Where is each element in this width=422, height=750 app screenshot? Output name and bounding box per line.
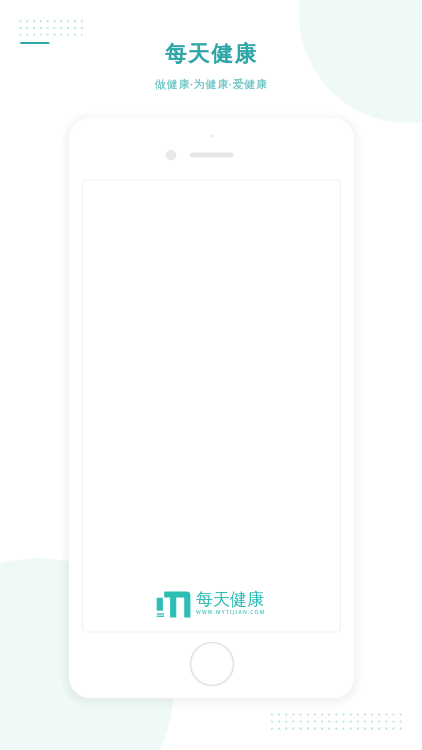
other: 每天健康 logo — [156, 587, 192, 619]
staticText: 做健康·为健康·爱健康 — [155, 76, 268, 91]
staticText: 每天健康 — [165, 40, 258, 67]
button[interactable]: Home — [189, 641, 235, 687]
staticText: 每天健康 — [196, 589, 264, 610]
button[interactable]: 每天健康 logo — [156, 587, 268, 619]
staticText: WWW.MYTIJIAN.COM — [196, 609, 266, 616]
